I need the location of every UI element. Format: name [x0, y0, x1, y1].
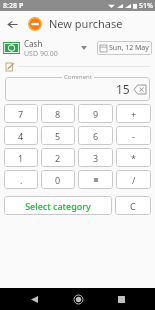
button[interactable]: 7: [4, 104, 38, 123]
staticText: 4: [18, 130, 24, 142]
staticText: Select category: [25, 200, 91, 212]
staticText: 5: [55, 130, 61, 142]
button[interactable]: Back: [24, 289, 44, 309]
button[interactable]: Choose account: [77, 41, 91, 55]
button[interactable]: Back: [0, 12, 24, 36]
button[interactable]: Recents: [111, 289, 131, 309]
button[interactable]: *: [116, 148, 151, 167]
button[interactable]: 1: [4, 148, 38, 167]
staticText: 8: [55, 108, 61, 120]
button[interactable]: /: [116, 170, 151, 189]
button[interactable]: +: [116, 104, 151, 123]
staticText: *: [131, 152, 136, 164]
staticText: .: [20, 174, 23, 186]
button[interactable]: Expense type: [27, 16, 43, 32]
button[interactable]: Sun, 12 May: [97, 41, 152, 55]
staticText: 2: [55, 152, 61, 164]
button[interactable]: 5: [41, 126, 75, 145]
staticText: Cash: [24, 38, 43, 49]
button[interactable]: Home: [68, 289, 88, 309]
button[interactable]: -: [116, 126, 151, 145]
button[interactable]: Select category: [4, 196, 112, 215]
button[interactable]: 4: [4, 126, 38, 145]
staticText: 9: [93, 108, 99, 120]
button[interactable]: 8: [41, 104, 75, 123]
staticText: 51%: [139, 1, 153, 11]
button[interactable]: Backspace: [134, 85, 146, 94]
button[interactable]: 9: [78, 104, 113, 123]
button[interactable]: C: [115, 196, 151, 215]
button[interactable]: 15: [5, 77, 150, 101]
button[interactable]: 0: [41, 170, 75, 189]
staticText: Sun, 12 May: [109, 43, 149, 53]
button[interactable]: 2: [41, 148, 75, 167]
staticText: 7: [18, 108, 24, 120]
button[interactable]: [78, 170, 113, 189]
staticText: C: [130, 200, 136, 212]
staticText: 8:28: [3, 1, 17, 11]
staticText: -: [132, 130, 135, 142]
staticText: 3: [93, 152, 99, 164]
button[interactable]: 3: [78, 148, 113, 167]
staticText: P: [19, 1, 24, 11]
staticText: 6: [93, 130, 99, 142]
button[interactable]: Add note: [4, 61, 15, 72]
staticText: USD 90.00: [24, 49, 58, 59]
button[interactable]: .: [4, 170, 38, 189]
staticText: 1: [18, 152, 24, 164]
staticText: /: [132, 174, 136, 186]
staticText: Comment: [64, 73, 92, 81]
staticText: 0: [55, 174, 61, 186]
staticText: New purchase: [49, 16, 123, 31]
button[interactable]: 6: [78, 126, 113, 145]
staticText: 15: [116, 81, 130, 97]
staticText: +: [131, 108, 137, 120]
